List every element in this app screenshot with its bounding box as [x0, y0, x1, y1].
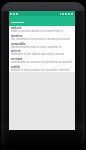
button[interactable]: ambush — [11, 26, 73, 32]
staticText: belonging to the distant past and no lon… — [11, 52, 73, 55]
button[interactable]: iteration — [11, 34, 73, 40]
staticText: contemplate or conceive of something as … — [11, 60, 72, 63]
staticText: make a surprise attack on someone from a… — [11, 29, 73, 32]
staticText: envisage — [11, 57, 23, 60]
staticText: compatible — [11, 42, 26, 45]
staticText: the repetition of a process or utterance… — [11, 37, 70, 40]
button[interactable]: Word Book — [9, 16, 75, 26]
staticText: things suited to exist or occur together… — [11, 45, 73, 48]
staticText: Word Book — [11, 20, 24, 23]
staticText: ancient — [11, 49, 21, 52]
staticText: ambush — [11, 26, 22, 29]
staticText: iteration — [11, 34, 23, 37]
staticText: present in large numbers or quantities; … — [11, 68, 70, 71]
staticText: prolific — [11, 65, 21, 68]
button[interactable]: envisage — [11, 57, 73, 63]
button[interactable]: compatible — [11, 42, 73, 48]
button[interactable]: ancient — [11, 49, 73, 55]
button[interactable]: prolific — [11, 65, 73, 71]
